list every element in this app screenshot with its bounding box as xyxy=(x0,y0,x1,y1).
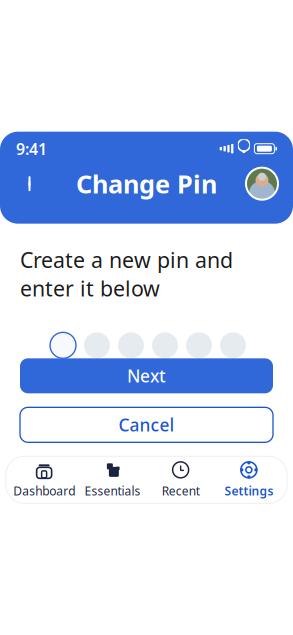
staticText: Recent xyxy=(162,483,200,499)
button[interactable]: Next xyxy=(20,358,273,393)
staticText: Dashboard xyxy=(13,483,75,499)
button[interactable]: Recent xyxy=(146,453,215,507)
button[interactable]: Essentials xyxy=(78,453,146,507)
staticText: 9:41 xyxy=(16,138,47,159)
button[interactable]: Dashboard xyxy=(10,453,78,507)
staticText: Essentials xyxy=(84,483,140,499)
staticText: Next xyxy=(127,364,166,387)
button[interactable]: Cancel xyxy=(20,407,273,442)
button[interactable]: Back xyxy=(14,167,48,201)
staticText: Cancel xyxy=(118,413,174,436)
staticText: Change Pin xyxy=(76,167,217,200)
staticText: Settings xyxy=(224,483,273,499)
staticText: Create a new pin and enter it below xyxy=(20,246,233,302)
button[interactable]: Settings xyxy=(215,453,283,507)
button[interactable]: Profile xyxy=(245,167,279,201)
